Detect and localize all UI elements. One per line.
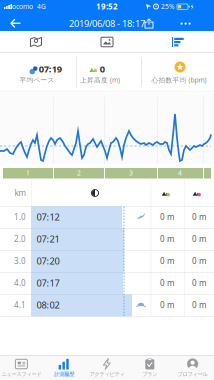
- button[interactable]: Share: [144, 18, 153, 28]
- staticText: 4.0: [14, 278, 26, 288]
- button[interactable]: 計測履歴: [43, 356, 85, 380]
- staticText: 2.0: [14, 234, 26, 244]
- button[interactable]: Map: [30, 36, 42, 47]
- button[interactable]: Photos: [101, 37, 113, 47]
- staticText: 心拍数平均 (bpm): [151, 76, 206, 84]
- button[interactable]: ニュースフィード: [0, 356, 42, 380]
- staticText: 07:19: [39, 63, 62, 75]
- staticText: 上昇高度 (m): [80, 76, 120, 84]
- staticText: 0 m: [192, 300, 206, 310]
- staticText: 計測履歴: [54, 371, 74, 378]
- staticText: 19:52: [96, 1, 118, 12]
- staticText: 0 m: [160, 256, 174, 266]
- staticText: 0 m: [192, 278, 206, 288]
- staticText: 3: [129, 169, 133, 177]
- staticText: 0 m: [192, 234, 206, 244]
- staticText: 07:12: [36, 211, 59, 223]
- button[interactable]: More: [180, 19, 191, 27]
- staticText: 0 m: [160, 212, 174, 222]
- staticText: ニュースフィード: [1, 371, 41, 378]
- button[interactable]: プロフィール: [172, 356, 214, 380]
- staticText: 0: [100, 63, 105, 75]
- staticText: 0 m: [160, 278, 174, 288]
- staticText: 07:17: [36, 277, 59, 289]
- staticText: 平均ペース: [19, 76, 54, 84]
- staticText: 2019/06/08 - 18:17: [69, 17, 145, 30]
- staticText: 2: [77, 169, 81, 177]
- staticText: 1: [26, 169, 30, 177]
- button[interactable]: アクティビティ: [86, 356, 128, 380]
- staticText: プロフィール: [178, 371, 208, 378]
- button[interactable]: Back: [7, 18, 23, 28]
- staticText: 07:20: [36, 255, 59, 267]
- staticText: 4: [178, 169, 182, 177]
- staticText: 0 m: [160, 300, 174, 310]
- staticText: プラン: [142, 371, 157, 378]
- button[interactable]: Splits: [172, 37, 184, 47]
- staticText: 07:21: [36, 233, 59, 245]
- button[interactable]: プラン: [129, 356, 171, 380]
- staticText: アクティビティ: [89, 371, 124, 378]
- staticText: 25%: [161, 2, 175, 11]
- staticText: 08:02: [36, 299, 59, 311]
- staticText: 1.0: [14, 212, 26, 222]
- staticText: 3.0: [14, 256, 26, 266]
- staticText: 0 m: [160, 234, 174, 244]
- staticText: 0 m: [192, 212, 206, 222]
- staticText: docomo 4G: [8, 2, 46, 11]
- staticText: 0 m: [192, 256, 206, 266]
- staticText: 4.1: [14, 300, 26, 310]
- staticText: km: [14, 188, 25, 198]
